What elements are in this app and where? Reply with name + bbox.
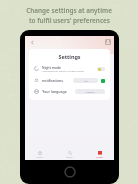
staticText: to fulfil users’ preferences <box>29 16 110 25</box>
button[interactable]: Profile <box>105 39 111 45</box>
button[interactable]: Night mode <box>29 64 110 73</box>
button[interactable]: Home <box>25 149 54 160</box>
button[interactable]: Home <box>64 166 76 178</box>
button[interactable]: Search <box>54 149 84 160</box>
button[interactable]: Back <box>28 38 36 46</box>
staticText: Automatically switch to night mode <box>42 69 84 72</box>
staticText: English <box>86 90 95 93</box>
staticText: Search <box>66 156 73 159</box>
button[interactable]: Profile <box>84 149 114 160</box>
staticText: On <box>84 79 88 82</box>
staticText: Night mode <box>42 65 61 69</box>
staticText: Settings <box>58 53 81 60</box>
staticText: Change settings at anytime <box>26 6 112 15</box>
staticText: Your language <box>42 89 67 94</box>
staticText: Profile <box>96 156 103 159</box>
button[interactable]: notifications <box>29 77 110 84</box>
button[interactable]: Your language <box>29 88 110 95</box>
staticText: notifications <box>42 78 63 83</box>
staticText: Home <box>36 156 43 159</box>
